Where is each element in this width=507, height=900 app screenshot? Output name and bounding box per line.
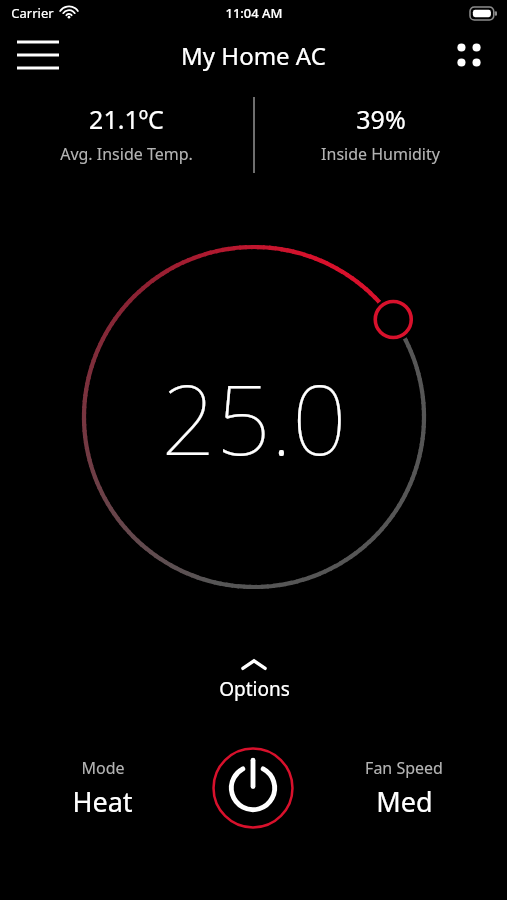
staticText: 39% <box>356 102 406 136</box>
staticText: Inside Humidity <box>321 143 440 165</box>
staticText: 21.1ºC <box>89 102 164 136</box>
staticText: Mode <box>81 757 125 779</box>
staticText: My Home AC <box>181 39 326 72</box>
staticText: Avg. Inside Temp. <box>60 143 193 165</box>
staticText: 25.0 <box>161 352 347 483</box>
button[interactable]: Fan Speed <box>301 757 507 820</box>
staticText: Heat <box>72 783 133 820</box>
button[interactable]: Menu <box>12 33 64 77</box>
staticText: Med <box>376 783 433 820</box>
staticText: 11:04 AM <box>225 4 283 22</box>
button[interactable]: Mode <box>0 757 205 820</box>
button[interactable]: Power <box>205 740 301 836</box>
button[interactable]: Grid view <box>445 33 493 77</box>
button[interactable]: Options <box>179 652 329 708</box>
staticText: Options <box>219 676 290 702</box>
staticText: Carrier <box>11 4 54 22</box>
staticText: Fan Speed <box>365 757 443 779</box>
